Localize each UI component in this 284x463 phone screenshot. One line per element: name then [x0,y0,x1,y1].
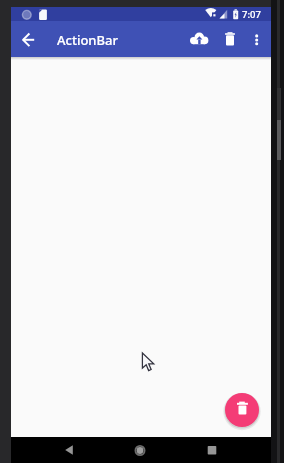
button[interactable] [200,438,224,462]
button[interactable] [57,438,81,462]
button[interactable] [12,27,36,51]
button[interactable] [128,438,152,462]
button[interactable] [187,27,212,52]
staticText: 7:07 [242,8,261,21]
button[interactable] [225,393,259,427]
button[interactable] [245,27,268,50]
staticText: ActionBar [57,31,118,49]
button[interactable] [218,27,242,51]
